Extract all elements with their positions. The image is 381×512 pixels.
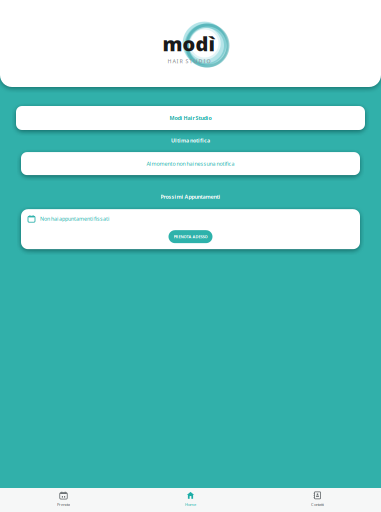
staticText: PRENOTA ADESSO: [173, 234, 207, 239]
staticText: H A I R S T U D I O: [167, 58, 210, 65]
staticText: Non hai appuntamenti fissati: [40, 215, 109, 222]
staticText: modì: [162, 30, 215, 57]
staticText: Prenota: [57, 502, 70, 507]
staticText: Ultima notifica: [171, 137, 210, 144]
staticText: Home: [185, 502, 196, 507]
staticText: Modì Hair Studio: [169, 114, 211, 122]
button[interactable]: Home: [127, 487, 254, 512]
button[interactable]: Contatti: [254, 487, 381, 512]
button[interactable]: PRENOTA ADESSO: [168, 230, 212, 243]
staticText: Prossimi Appuntamenti: [160, 193, 220, 200]
button[interactable]: Prenota: [0, 487, 127, 512]
staticText: Contatti: [311, 502, 324, 507]
button[interactable]: Modì Hair Studio: [16, 106, 365, 130]
staticText: Al momento non hai nessuna notifica: [146, 160, 234, 167]
